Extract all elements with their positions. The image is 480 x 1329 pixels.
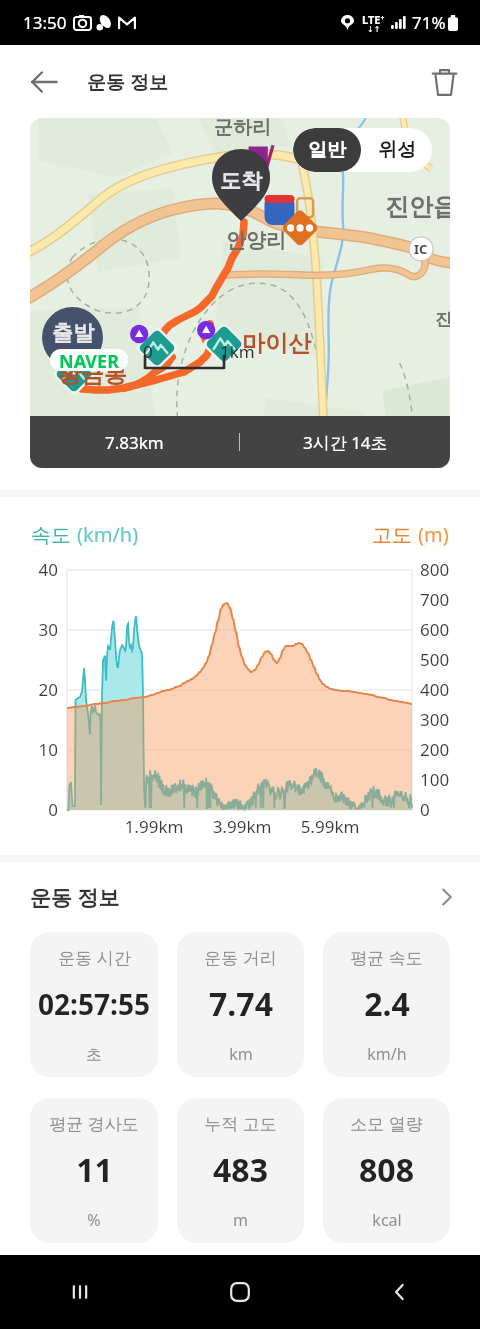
- button[interactable]: 누적 고도: [177, 1098, 304, 1243]
- staticText: 5.99km: [290, 815, 370, 838]
- button[interactable]: Home: [160, 1255, 320, 1329]
- staticText: kcal: [372, 1209, 402, 1231]
- button[interactable]: Recents: [0, 1255, 160, 1329]
- staticText: 0: [143, 340, 153, 363]
- staticText: %: [87, 1209, 101, 1231]
- staticText: IC: [414, 240, 428, 258]
- staticText: 483: [213, 1148, 268, 1192]
- staticText: 황금봉: [58, 360, 127, 389]
- staticText: m: [233, 1209, 248, 1231]
- staticText: ↓↑: [367, 25, 381, 34]
- button[interactable]: Back: [320, 1255, 480, 1329]
- staticText: (m): [418, 521, 449, 548]
- staticText: 0: [420, 798, 430, 821]
- staticText: 700: [420, 588, 450, 611]
- staticText: 7.83km: [105, 431, 164, 454]
- staticText: 운동 정보: [30, 883, 120, 912]
- staticText: 200: [420, 738, 450, 761]
- button[interactable]: 소모 열량: [323, 1098, 450, 1243]
- staticText: 100: [420, 768, 450, 791]
- staticText: 진안읍: [385, 192, 450, 222]
- staticText: 도착: [220, 168, 262, 194]
- staticText: 초: [86, 1045, 102, 1065]
- staticText: 운동 정보: [87, 69, 168, 95]
- staticText: 1km: [220, 340, 255, 363]
- button[interactable]: 운동 시간: [30, 932, 158, 1077]
- staticText: km/h: [367, 1043, 407, 1065]
- staticText: 평균 경사도: [49, 1112, 139, 1135]
- staticText: 평균 속도: [350, 946, 423, 969]
- staticText: 800: [420, 558, 450, 581]
- staticText: LTE⁺: [362, 12, 385, 27]
- button[interactable]: 운동 거리: [177, 932, 304, 1077]
- staticText: 누적 고도: [204, 1112, 277, 1135]
- staticText: 02:57:55: [38, 985, 150, 1023]
- staticText: 3.99km: [202, 815, 282, 838]
- button[interactable]: 위성: [361, 128, 432, 172]
- staticText: NAVER: [59, 349, 119, 371]
- staticText: 진안: [435, 309, 450, 330]
- button[interactable]: Map: [30, 118, 450, 468]
- button[interactable]: 운동 정보: [0, 862, 480, 932]
- button[interactable]: 평균 속도: [323, 932, 450, 1077]
- staticText: 2.4: [364, 982, 410, 1026]
- button[interactable]: Delete: [422, 60, 466, 104]
- staticText: 위성: [378, 138, 416, 162]
- staticText: 3시간 14초: [303, 431, 388, 454]
- staticText: 10: [28, 738, 58, 761]
- staticText: 808: [359, 1148, 414, 1192]
- staticText: (km/h): [77, 521, 139, 548]
- staticText: 운동 시간: [58, 946, 131, 969]
- staticText: 운동 거리: [204, 946, 277, 969]
- staticText: 속도: [31, 521, 77, 548]
- staticText: 마이산: [242, 329, 311, 358]
- staticText: 안양리: [226, 228, 286, 253]
- staticText: 600: [420, 618, 450, 641]
- staticText: 1.99km: [114, 815, 194, 838]
- staticText: 500: [420, 648, 450, 671]
- button[interactable]: 일반: [293, 128, 361, 172]
- staticText: 71%: [412, 11, 446, 34]
- staticText: 11: [76, 1148, 113, 1192]
- staticText: 고도: [372, 521, 418, 548]
- staticText: 40: [28, 558, 58, 581]
- staticText: 400: [420, 678, 450, 701]
- staticText: 7.74: [209, 982, 273, 1026]
- staticText: 13:50: [23, 11, 67, 34]
- staticText: 300: [420, 708, 450, 731]
- staticText: 0: [28, 798, 58, 821]
- staticText: 20: [28, 678, 58, 701]
- staticText: 소모 열량: [350, 1112, 423, 1135]
- staticText: 30: [28, 618, 58, 641]
- staticText: 출발: [52, 320, 94, 346]
- staticText: 군하리: [214, 118, 271, 140]
- staticText: 일반: [308, 138, 346, 162]
- button[interactable]: Back: [22, 60, 66, 104]
- staticText: km: [229, 1043, 253, 1065]
- button[interactable]: 평균 경사도: [30, 1098, 158, 1243]
